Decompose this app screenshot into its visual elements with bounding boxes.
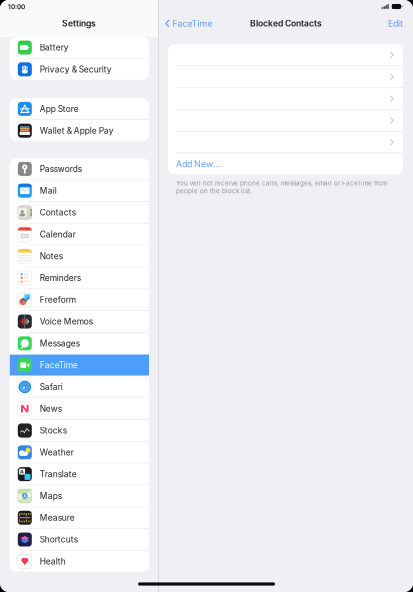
staticText: App Store: [40, 104, 79, 114]
staticText: Voice Memos: [40, 316, 93, 327]
staticText: Weather: [40, 447, 74, 457]
button[interactable]: App Store: [10, 98, 149, 119]
button[interactable]: Measure: [10, 507, 149, 528]
button[interactable]: Privacy & Security: [10, 59, 149, 80]
staticText: Freeform: [40, 295, 76, 305]
staticText: Messages: [40, 338, 80, 348]
staticText: Edit: [388, 18, 403, 29]
staticText: Stocks: [40, 425, 67, 436]
staticText: Privacy & Security: [40, 64, 112, 74]
staticText: 10:00: [8, 3, 25, 11]
staticText: Contacts: [40, 207, 76, 218]
button[interactable]: Shortcuts: [10, 529, 149, 550]
staticText: You will not receive phone calls, messag…: [176, 179, 387, 195]
staticText: Wallet & Apple Pay: [40, 126, 114, 136]
staticText: Translate: [40, 469, 77, 479]
button[interactable]: Messages: [10, 333, 149, 354]
staticText: Health: [40, 556, 66, 566]
button[interactable]: Mail: [10, 180, 149, 201]
staticText: Settings: [62, 18, 96, 29]
button[interactable]: Health: [10, 551, 149, 572]
staticText: A: [20, 468, 24, 475]
button[interactable]: Voice Memos: [10, 311, 149, 332]
button[interactable]: Passwords: [10, 158, 149, 179]
button[interactable]: FaceTime: [10, 355, 149, 376]
staticText: News: [40, 404, 62, 414]
staticText: Passwords: [40, 164, 82, 174]
staticText: Measure: [40, 513, 75, 523]
button[interactable]: Battery: [10, 37, 149, 58]
staticText: A: [23, 493, 26, 499]
button[interactable]: Calendar: [10, 224, 149, 245]
button[interactable]: Weather: [10, 442, 149, 463]
staticText: Reminders: [40, 273, 81, 283]
button[interactable]: Wallet & Apple Pay: [10, 120, 149, 141]
button[interactable]: Blocked contact: [168, 44, 403, 65]
staticText: Mail: [40, 186, 57, 196]
staticText: Add New...: [176, 159, 222, 169]
button[interactable]: A: [10, 485, 149, 506]
button[interactable]: A: [10, 464, 149, 485]
staticText: Blocked Contacts: [250, 18, 322, 29]
staticText: Notes: [40, 251, 63, 261]
button[interactable]: Reminders: [10, 267, 149, 288]
staticText: Shortcuts: [40, 534, 78, 545]
button[interactable]: Freeform: [10, 289, 149, 310]
staticText: Battery: [40, 42, 69, 53]
button[interactable]: Edit: [388, 13, 413, 34]
button[interactable]: Stocks: [10, 420, 149, 441]
button[interactable]: Notes: [10, 246, 149, 267]
button[interactable]: FaceTime: [159, 13, 212, 34]
button[interactable]: Add New...: [168, 153, 403, 174]
button[interactable]: News: [10, 398, 149, 419]
staticText: FaceTime: [172, 18, 212, 29]
staticText: FaceTime: [40, 360, 78, 370]
staticText: Safari: [40, 382, 63, 392]
button[interactable]: Safari: [10, 376, 149, 397]
button[interactable]: Contacts: [10, 202, 149, 223]
staticText: Calendar: [40, 229, 76, 239]
staticText: Maps: [40, 491, 62, 501]
